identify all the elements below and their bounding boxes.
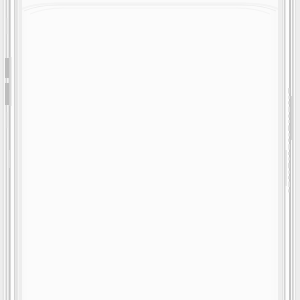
- button[interactable]: Clear protective phone case, front view: [0, 0, 300, 300]
